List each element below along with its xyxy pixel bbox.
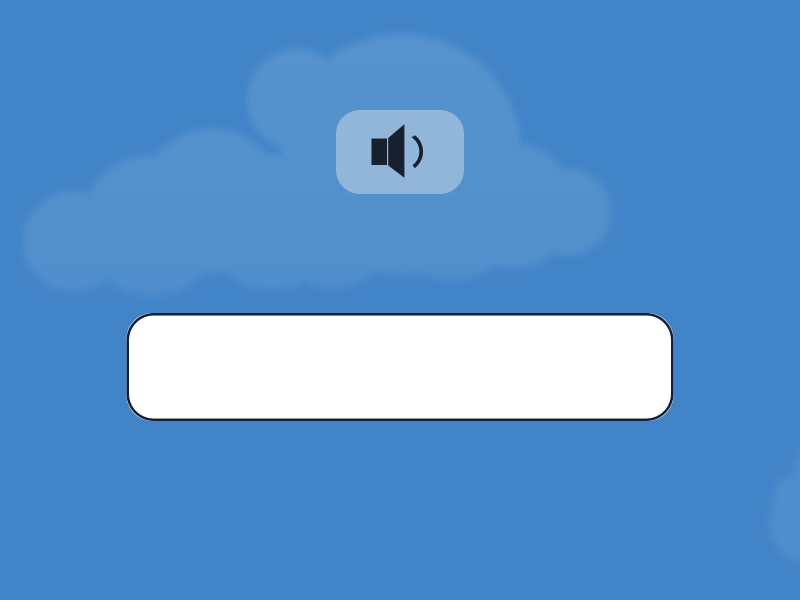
- button[interactable]: Play pronunciation: [336, 110, 464, 194]
